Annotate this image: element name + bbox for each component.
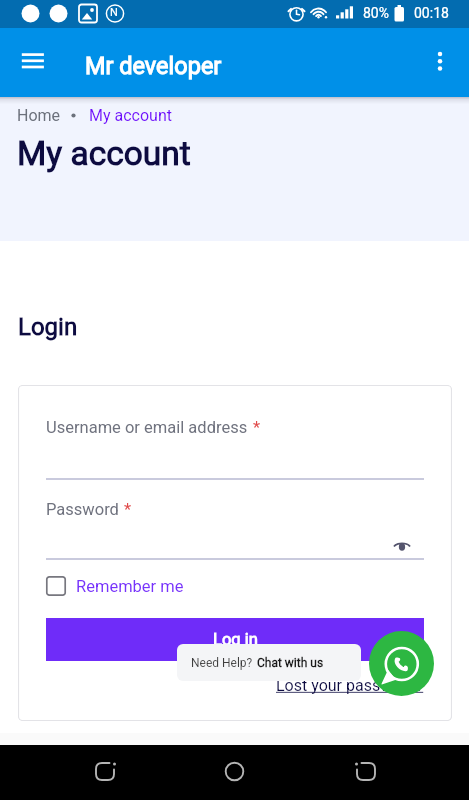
button[interactable]: Remember me — [46, 576, 184, 596]
staticText: Log in — [213, 630, 258, 649]
staticText: Password — [46, 500, 119, 519]
staticText: Mr developer — [85, 52, 222, 80]
staticText: Chat with us — [257, 656, 324, 670]
button[interactable]: Chat on WhatsApp — [369, 631, 434, 696]
staticText: N — [110, 6, 118, 19]
button[interactable]: Recent apps — [345, 756, 387, 789]
staticText: My account — [17, 134, 191, 173]
button[interactable]: Home — [214, 756, 256, 789]
staticText: 00:18 — [414, 5, 449, 21]
button[interactable]: Open navigation menu — [14, 44, 52, 82]
staticText: Login — [18, 313, 78, 341]
button[interactable]: Lost your password? — [276, 676, 424, 695]
staticText: * — [253, 418, 261, 437]
staticText: 80% — [363, 5, 389, 21]
staticText: Need Help? — [191, 656, 253, 670]
staticText: Username or email address — [46, 418, 248, 437]
button[interactable]: Show password — [391, 537, 413, 553]
staticText: * — [124, 500, 132, 519]
button[interactable]: Home — [17, 106, 61, 125]
button[interactable]: Need Help? — [177, 644, 361, 681]
button[interactable]: Back — [84, 756, 126, 789]
button[interactable]: More options — [424, 47, 456, 79]
staticText: Remember me — [76, 577, 184, 596]
button[interactable]: My account — [89, 106, 172, 125]
button[interactable]: Log in — [46, 618, 424, 661]
